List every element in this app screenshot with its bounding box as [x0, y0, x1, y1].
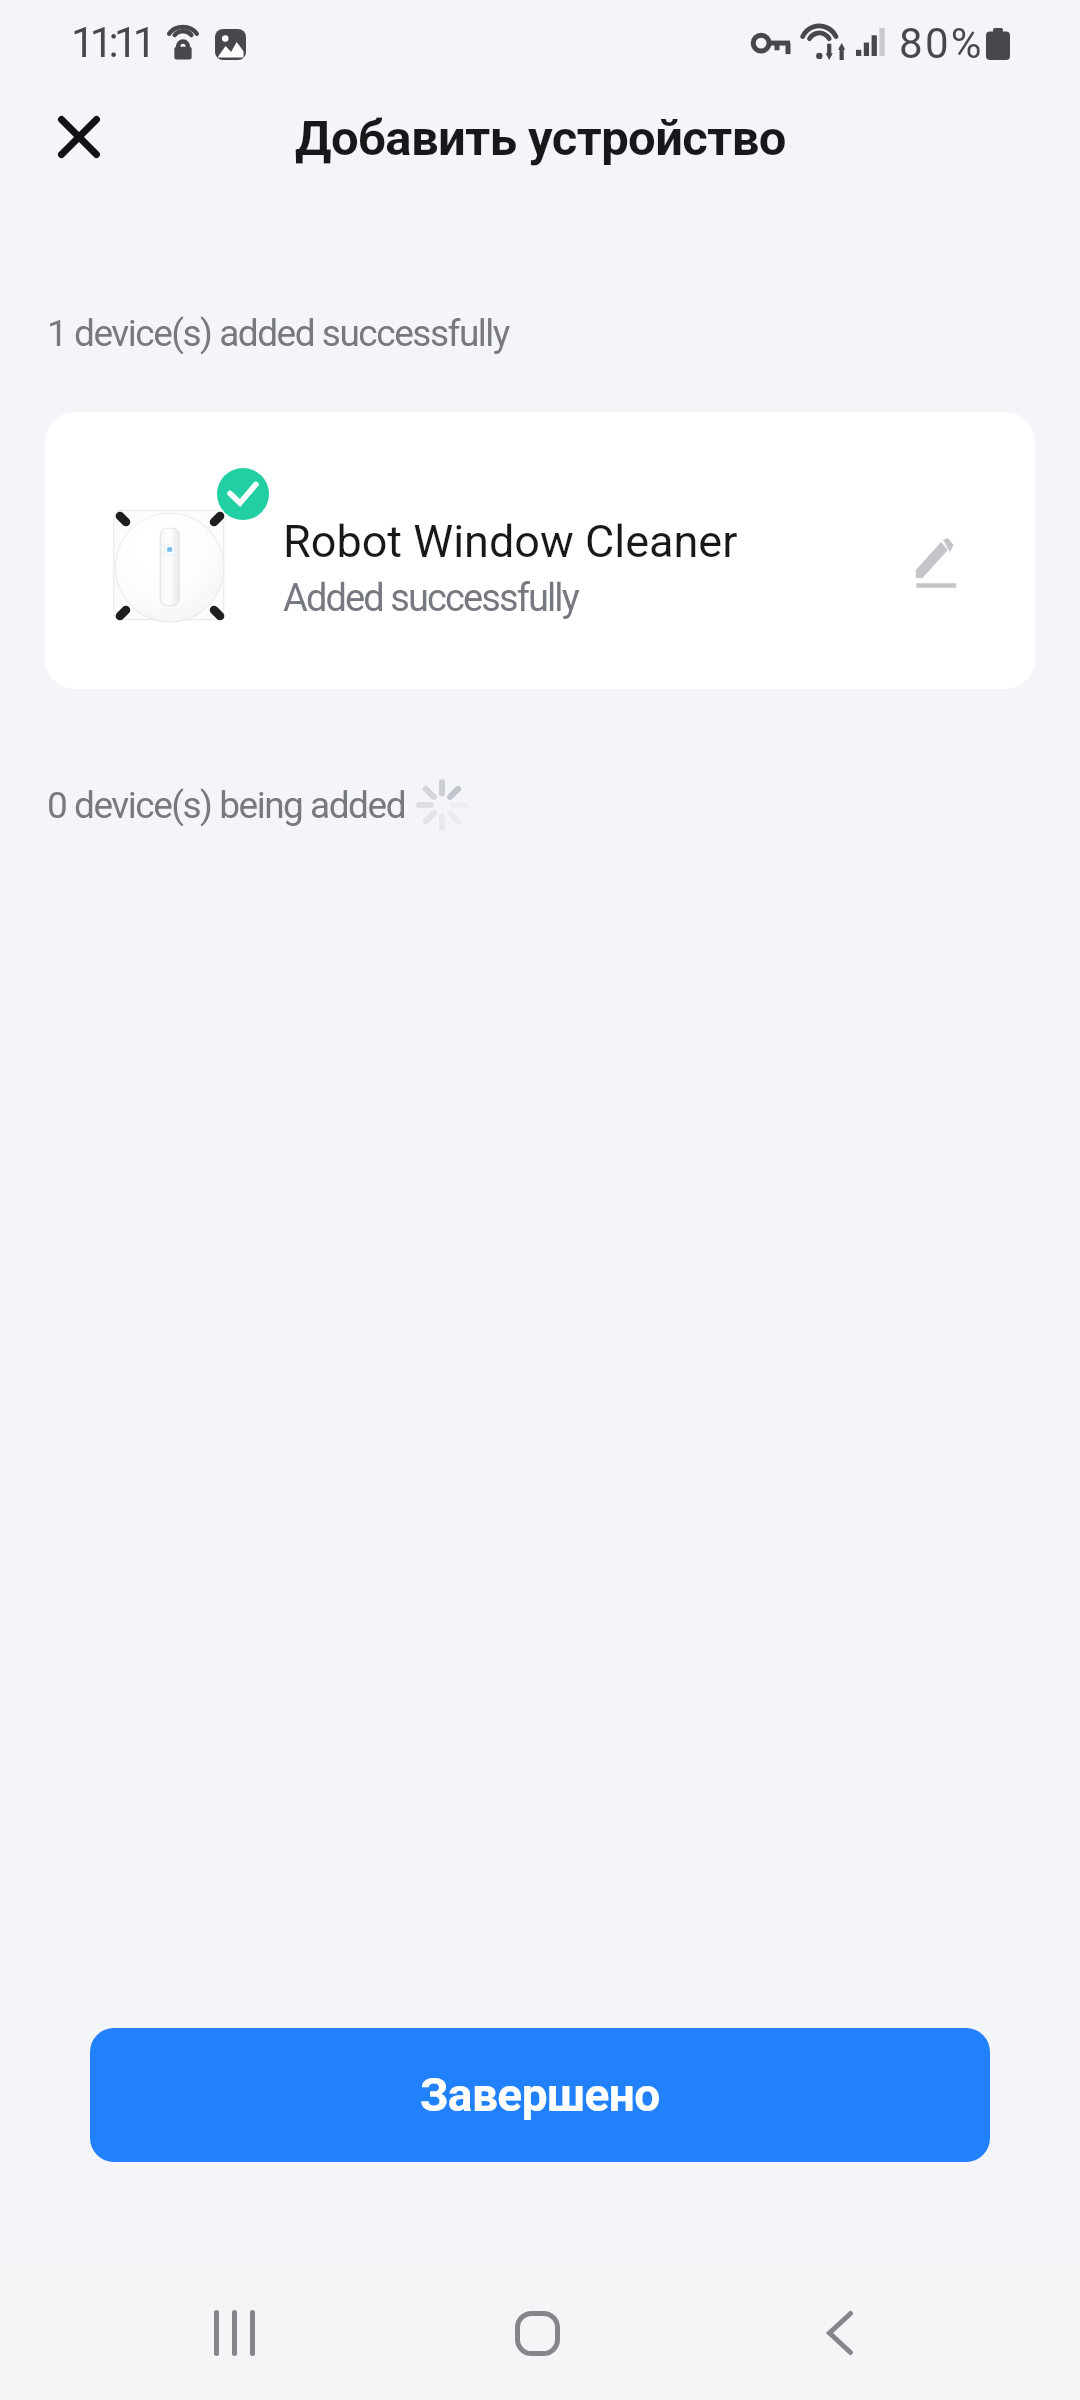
staticText: 1 device(s) added successfully	[47, 312, 509, 355]
button[interactable]: Recent apps	[175, 2273, 295, 2393]
staticText: Robot Window Cleaner	[283, 515, 738, 568]
staticText: Added successfully	[283, 576, 578, 621]
button[interactable]: Home	[477, 2273, 597, 2393]
button[interactable]: Close	[31, 89, 127, 185]
staticText: Добавить устройство	[295, 110, 786, 167]
staticText: Завершено	[420, 2068, 660, 2122]
button[interactable]: Robot Window Cleaner	[45, 412, 1035, 689]
staticText: 80%	[899, 19, 984, 68]
button[interactable]: Завершено	[90, 2028, 990, 2162]
staticText: 0 device(s) being added	[47, 784, 406, 827]
button[interactable]: Back	[780, 2273, 900, 2393]
staticText: 11:11	[71, 18, 152, 67]
button[interactable]: Rename device	[890, 518, 982, 610]
